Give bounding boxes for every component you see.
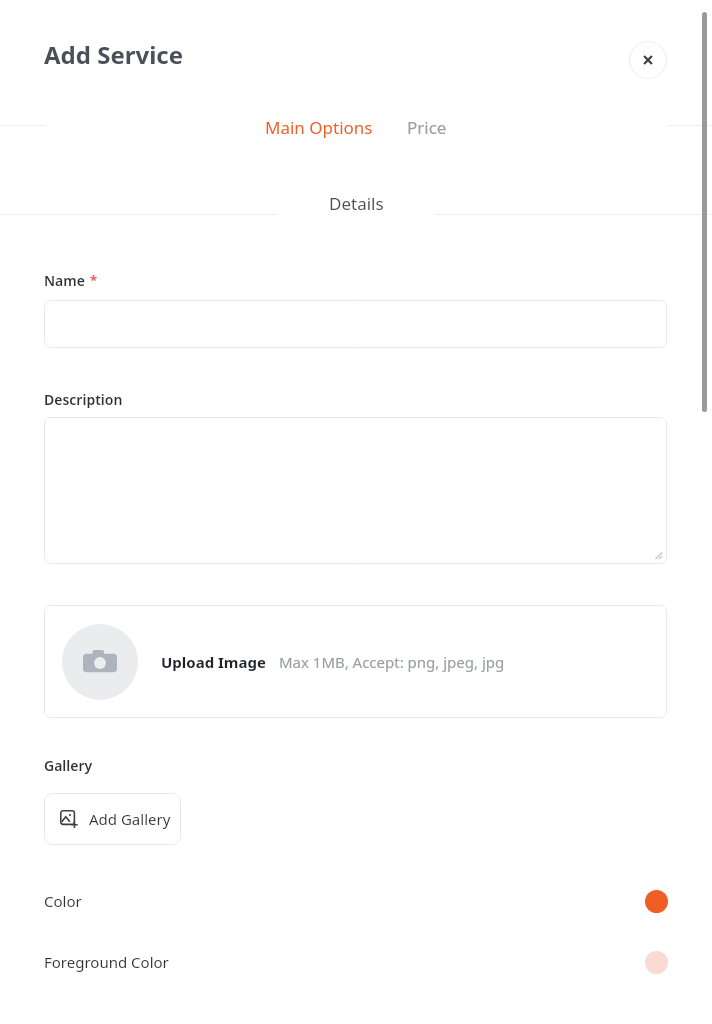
staticText: Name [44,271,85,290]
staticText: Upload Image [161,652,266,672]
staticText: Details [329,192,384,215]
button[interactable] [44,417,667,564]
staticText: Gallery [44,756,93,775]
button[interactable]: Foreground Color [0,941,712,983]
button[interactable]: Add Gallery [44,793,181,845]
button[interactable]: Price [403,112,451,143]
button[interactable]: Upload Image [44,605,667,718]
staticText: Main Options [265,116,373,139]
staticText: Add Gallery [89,809,171,829]
staticText: Color [44,891,82,911]
button[interactable]: Close [629,41,667,79]
staticText: Price [407,116,447,139]
button[interactable] [44,300,667,348]
button[interactable]: Main Options [261,112,377,143]
staticText: Add Service [44,38,184,71]
button[interactable]: Color [0,880,712,922]
staticText: Description [44,390,123,409]
staticText: Foreground Color [44,952,169,972]
button[interactable]: Add Service [44,38,184,71]
staticText: * [90,271,98,289]
staticText: Max 1MB, Accept: png, jpeg, jpg [279,652,505,672]
